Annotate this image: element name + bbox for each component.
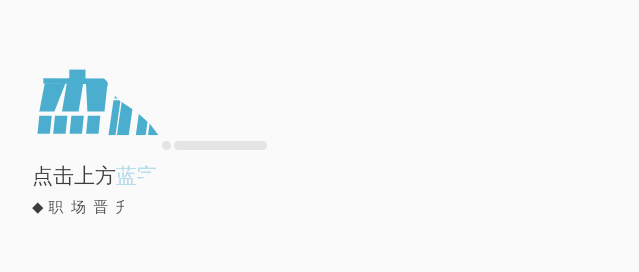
button[interactable]: Account xyxy=(162,141,267,150)
staticText: 点击上方蓝字关注我们 xyxy=(32,163,242,189)
staticText: ◆职场晋升指南 xyxy=(32,198,183,217)
